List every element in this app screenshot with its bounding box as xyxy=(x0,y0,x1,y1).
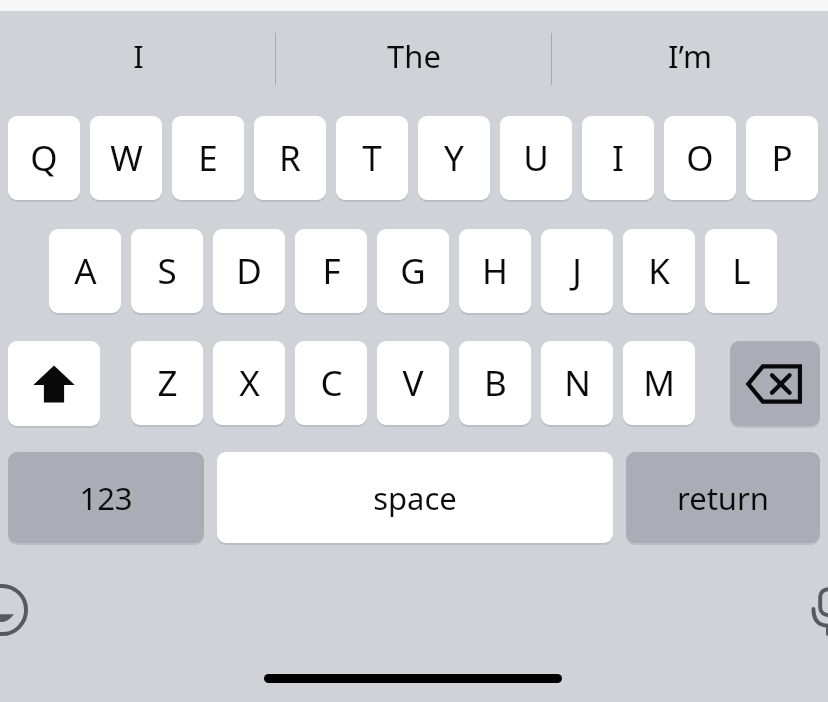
staticText: V xyxy=(402,359,424,407)
staticText: The xyxy=(387,35,441,77)
button[interactable]: space xyxy=(217,452,613,543)
button[interactable]: D xyxy=(213,229,285,313)
button[interactable]: C xyxy=(295,341,367,425)
staticText: S xyxy=(157,247,177,295)
staticText: O xyxy=(686,134,714,182)
staticText: D xyxy=(236,247,262,295)
button[interactable]: Emoji xyxy=(0,584,28,636)
staticText: C xyxy=(320,359,343,407)
staticText: A xyxy=(74,247,97,295)
staticText: return xyxy=(677,477,769,519)
button[interactable]: I’m xyxy=(552,11,828,100)
button[interactable]: O xyxy=(664,116,736,200)
button[interactable]: Z xyxy=(131,341,203,425)
staticText: M xyxy=(643,359,675,407)
button[interactable]: B xyxy=(459,341,531,425)
button[interactable]: K xyxy=(623,229,695,313)
button[interactable]: E xyxy=(172,116,244,200)
staticText: K xyxy=(648,247,670,295)
button[interactable]: U xyxy=(500,116,572,200)
staticText: L xyxy=(732,247,751,295)
button[interactable]: R xyxy=(254,116,326,200)
button[interactable]: The xyxy=(276,11,552,100)
button[interactable]: X xyxy=(213,341,285,425)
staticText: F xyxy=(322,247,341,295)
staticText: H xyxy=(482,247,508,295)
button[interactable]: I xyxy=(0,11,276,100)
button[interactable]: N xyxy=(541,341,613,425)
staticText: R xyxy=(279,134,301,182)
staticText: Z xyxy=(157,359,178,407)
staticText: Y xyxy=(444,134,464,182)
button[interactable]: Shift xyxy=(8,341,100,426)
staticText: U xyxy=(523,134,549,182)
button[interactable]: J xyxy=(541,229,613,313)
staticText: P xyxy=(771,134,793,182)
button[interactable]: Q xyxy=(8,116,80,200)
staticText: I xyxy=(133,35,144,77)
button[interactable]: W xyxy=(90,116,162,200)
staticText: J xyxy=(572,247,582,295)
staticText: I xyxy=(612,134,624,182)
button[interactable]: G xyxy=(377,229,449,313)
button[interactable]: 123 xyxy=(8,452,204,543)
button[interactable]: P xyxy=(746,116,818,200)
button[interactable]: T xyxy=(336,116,408,200)
staticText: E xyxy=(198,134,218,182)
staticText: I’m xyxy=(668,35,712,77)
staticText: Q xyxy=(30,134,58,182)
button[interactable]: F xyxy=(295,229,367,313)
button[interactable]: return xyxy=(626,452,820,543)
button[interactable]: H xyxy=(459,229,531,313)
staticText: space xyxy=(373,477,457,519)
button[interactable]: S xyxy=(131,229,203,313)
button[interactable]: Dictation xyxy=(802,584,828,636)
button[interactable]: Backspace xyxy=(730,341,820,426)
staticText: W xyxy=(110,134,143,182)
staticText: X xyxy=(239,359,260,407)
button[interactable]: I xyxy=(582,116,654,200)
staticText: 123 xyxy=(79,477,133,519)
button[interactable]: L xyxy=(705,229,777,313)
staticText: N xyxy=(564,359,591,407)
button[interactable]: M xyxy=(623,341,695,425)
staticText: B xyxy=(484,359,507,407)
button[interactable]: A xyxy=(49,229,121,313)
button[interactable]: Y xyxy=(418,116,490,200)
staticText: G xyxy=(400,247,426,295)
staticText: T xyxy=(362,134,382,182)
button[interactable]: V xyxy=(377,341,449,425)
